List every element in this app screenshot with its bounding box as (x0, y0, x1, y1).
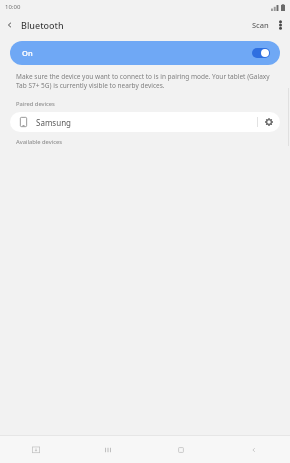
button[interactable]: More options (273, 16, 288, 34)
staticText: 10:00 (5, 3, 21, 11)
staticText: Paired devices (16, 100, 290, 108)
button[interactable]: Recents (72, 436, 144, 463)
staticText: Scan (252, 20, 269, 30)
button[interactable]: Scan (248, 16, 273, 34)
staticText: On (22, 48, 33, 58)
button[interactable]: Keyboard (0, 436, 72, 463)
button[interactable]: Samsung (10, 112, 280, 132)
button[interactable]: Back (0, 16, 70, 34)
button[interactable]: Device settings (258, 114, 280, 130)
staticText: Make sure the device you want to connect… (16, 72, 274, 90)
staticText: Bluetooth (21, 19, 64, 31)
staticText: Samsung (36, 117, 71, 128)
button[interactable]: Home (144, 436, 217, 463)
staticText: Available devices (16, 138, 290, 146)
other: Back (6, 21, 14, 29)
button[interactable]: On (10, 41, 280, 65)
